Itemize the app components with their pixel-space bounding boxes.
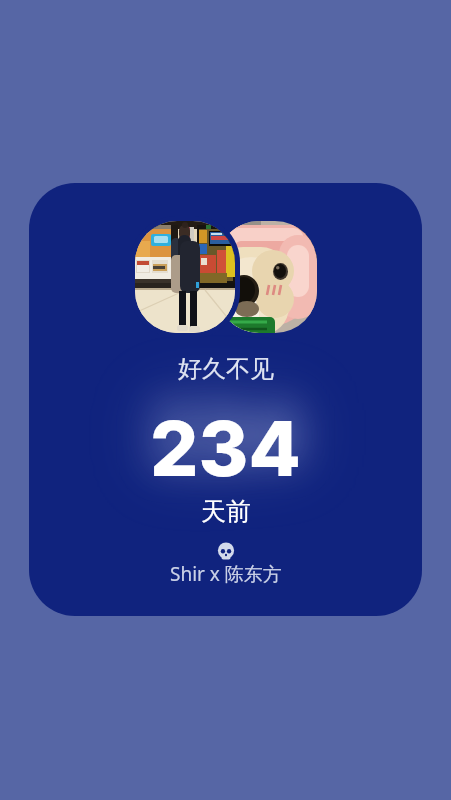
button[interactable]: 234 [29,183,422,616]
staticText: 天前 [201,496,251,527]
other: Skull [217,543,235,561]
staticText: 234 [150,386,301,478]
staticText: Shir x 陈东方 [170,561,282,587]
staticText: 234 [150,388,301,480]
staticText: 234 [150,402,301,494]
staticText: 好久不见 [178,354,274,384]
button[interactable]: Friend photos [135,221,317,333]
